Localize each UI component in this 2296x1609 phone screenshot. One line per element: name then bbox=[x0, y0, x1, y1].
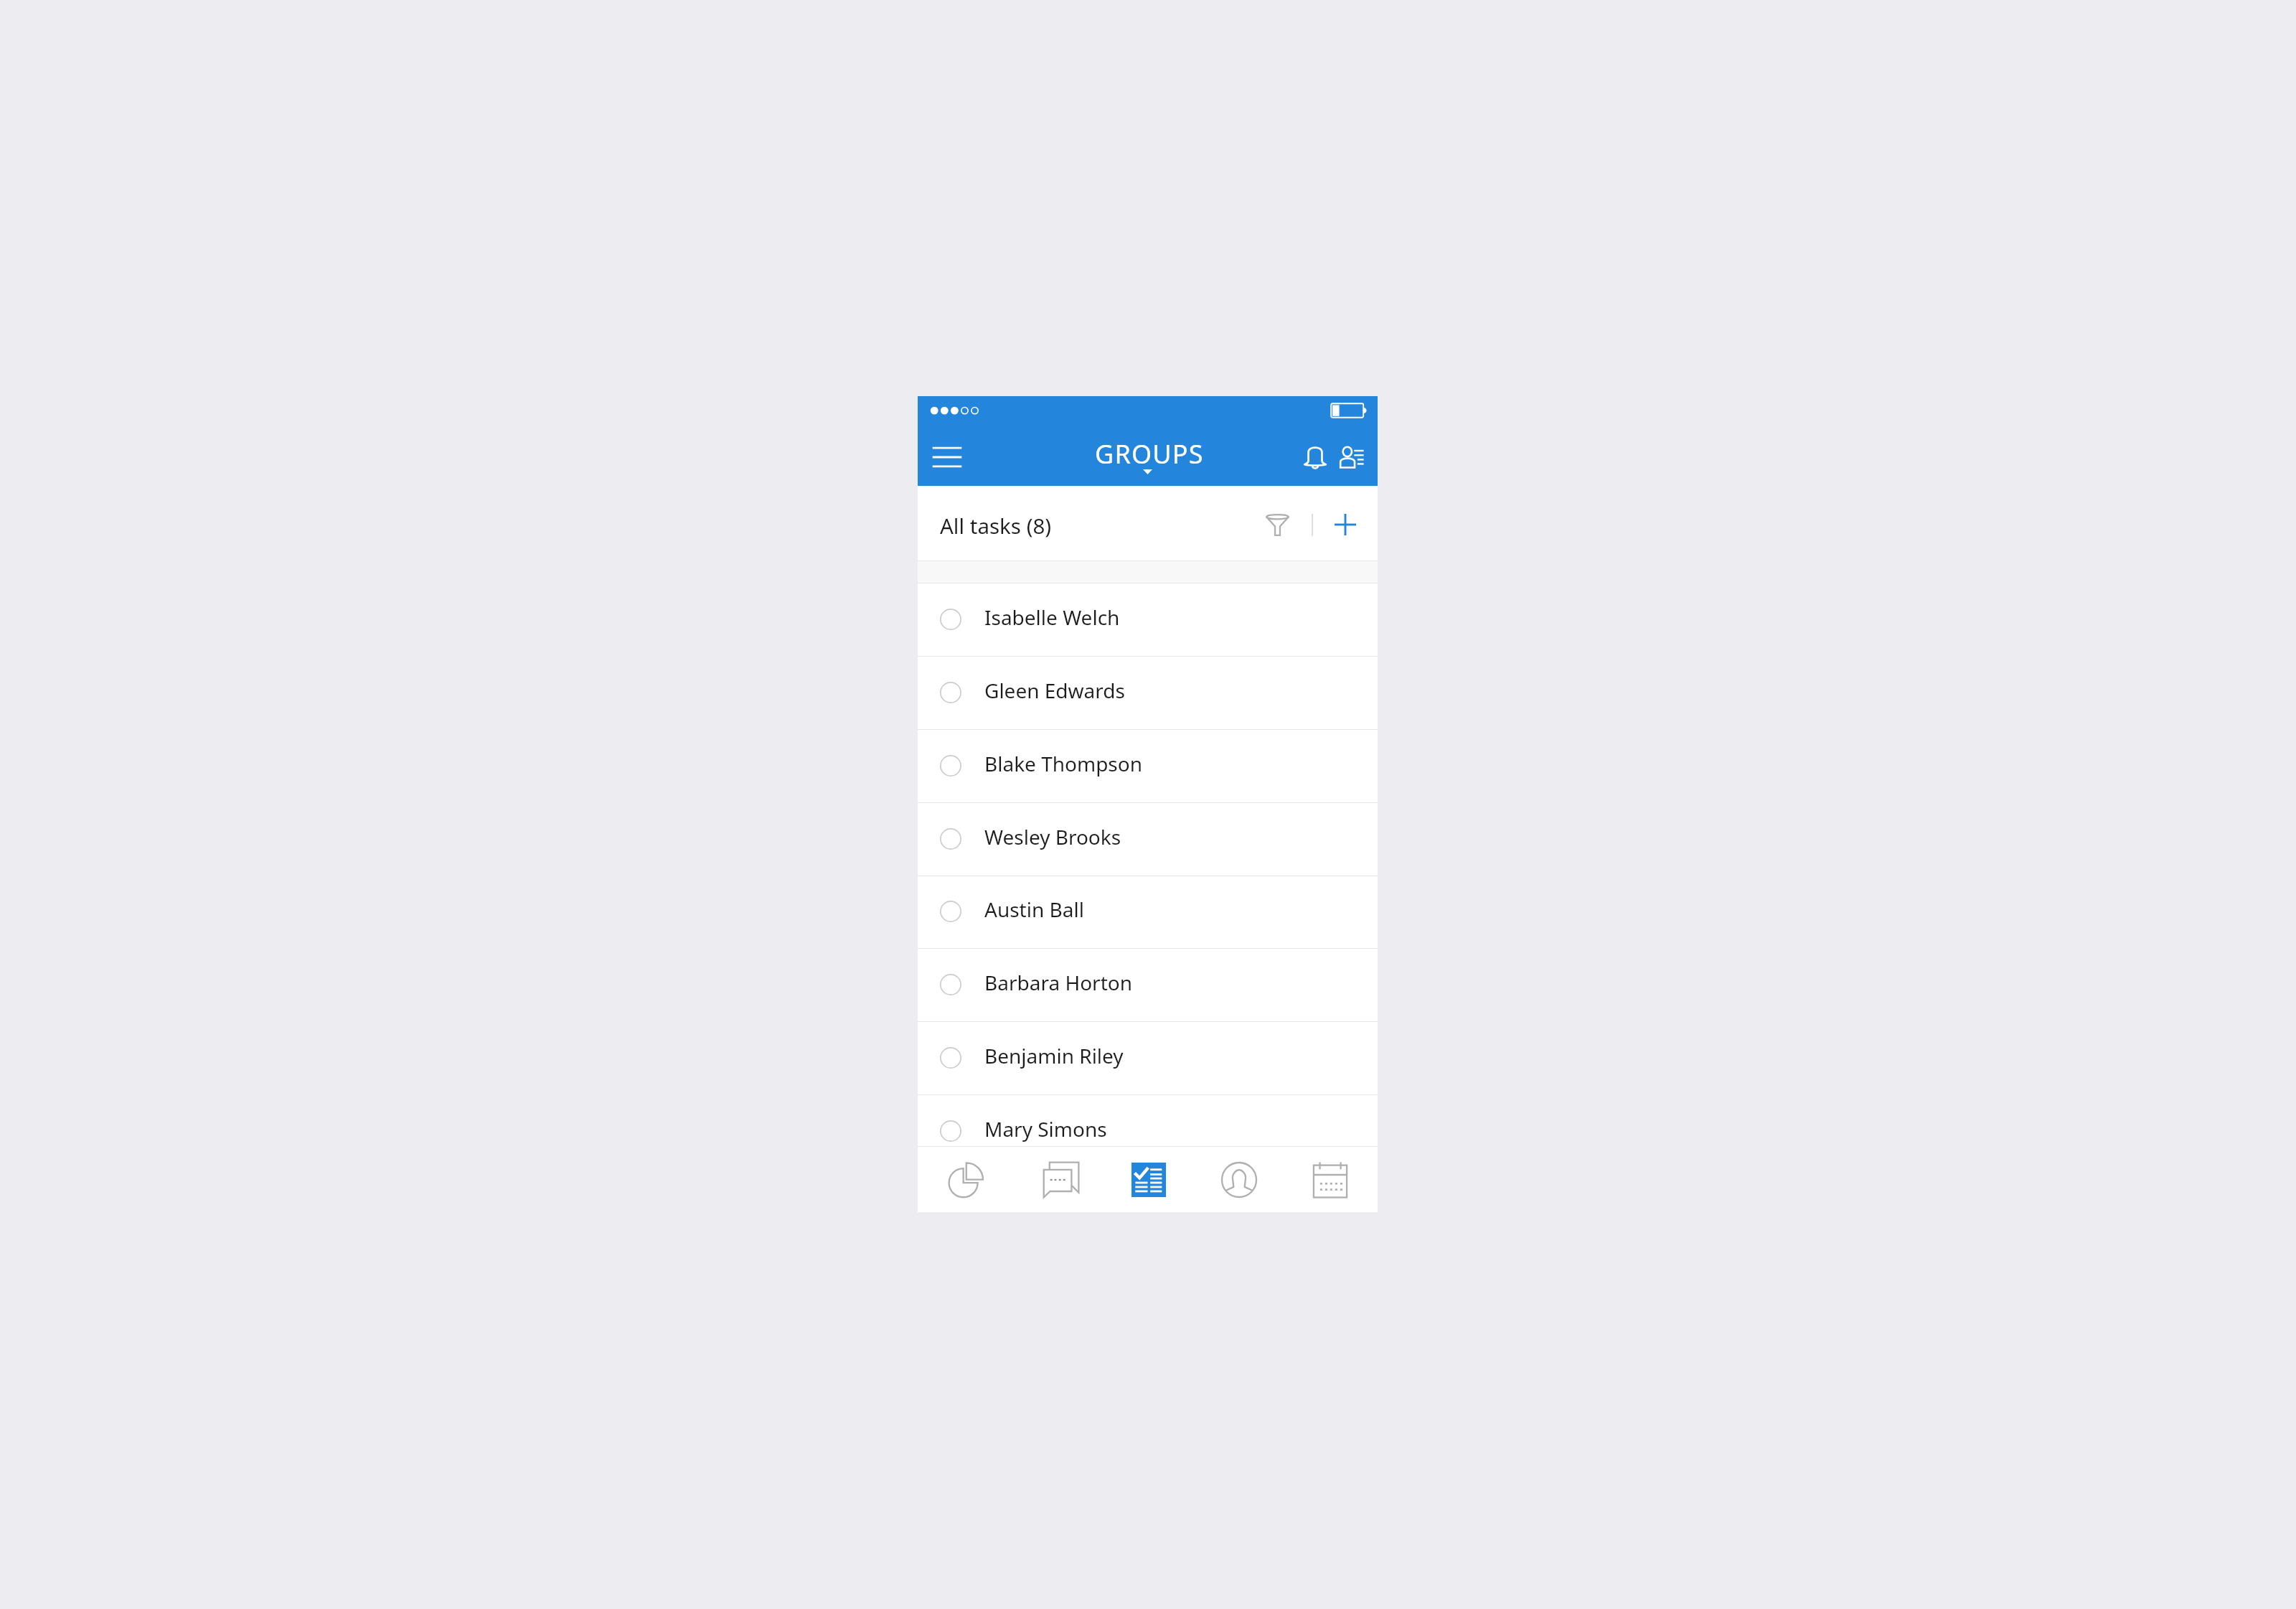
button[interactable]: Contacts bbox=[1213, 1154, 1265, 1206]
button[interactable]: Notifications bbox=[1295, 438, 1335, 479]
staticText: Blake Thompson bbox=[984, 750, 1143, 777]
staticText: Gleen Edwards bbox=[984, 677, 1125, 704]
staticText: All tasks (8) bbox=[940, 511, 1052, 540]
staticText: Austin Ball bbox=[984, 896, 1084, 923]
button[interactable]: Barbara Horton bbox=[918, 949, 1378, 1022]
button[interactable]: Gleen Edwards bbox=[918, 657, 1378, 730]
button[interactable]: Calendar bbox=[1304, 1154, 1356, 1206]
staticText: GROUPS bbox=[1095, 436, 1204, 472]
button[interactable]: Austin Ball bbox=[918, 876, 1378, 949]
button[interactable]: Reports bbox=[940, 1154, 992, 1206]
button[interactable]: Add task bbox=[1334, 513, 1357, 536]
button[interactable]: Mary Simons bbox=[918, 1095, 1378, 1146]
button[interactable]: Chats bbox=[1035, 1154, 1087, 1206]
staticText: Barbara Horton bbox=[984, 969, 1132, 996]
button[interactable]: Contacts bbox=[1332, 438, 1372, 478]
button[interactable]: Filter bbox=[1259, 507, 1295, 543]
button[interactable]: Menu bbox=[925, 436, 966, 478]
staticText: Wesley Brooks bbox=[984, 823, 1121, 850]
button[interactable]: Isabelle Welch bbox=[918, 583, 1378, 657]
button[interactable]: Tasks bbox=[1123, 1154, 1175, 1206]
staticText: Isabelle Welch bbox=[984, 604, 1120, 631]
button[interactable]: Wesley Brooks bbox=[918, 803, 1378, 876]
staticText: Benjamin Riley bbox=[984, 1042, 1124, 1069]
button[interactable]: Benjamin Riley bbox=[918, 1022, 1378, 1095]
staticText: Mary Simons bbox=[984, 1115, 1107, 1143]
button[interactable]: Blake Thompson bbox=[918, 730, 1378, 803]
